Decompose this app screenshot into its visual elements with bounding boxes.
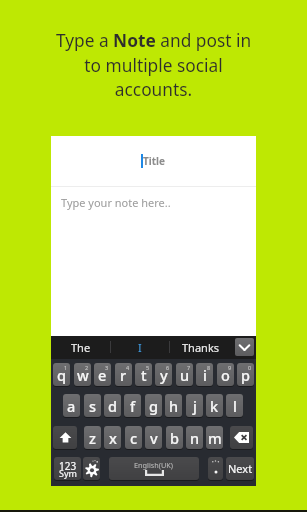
button[interactable]: More suggestions bbox=[235, 338, 254, 356]
staticText: I bbox=[138, 340, 142, 355]
button[interactable]: n bbox=[186, 426, 203, 449]
button[interactable]: y bbox=[155, 363, 172, 386]
staticText: h bbox=[169, 396, 179, 416]
staticText: 0 bbox=[248, 364, 252, 371]
button[interactable]: u bbox=[176, 363, 193, 386]
button[interactable]: s bbox=[84, 394, 101, 417]
button[interactable]: o bbox=[217, 363, 234, 386]
staticText: j bbox=[193, 396, 197, 416]
staticText: 2 bbox=[85, 364, 89, 371]
staticText: b bbox=[170, 428, 179, 448]
staticText: p bbox=[241, 365, 250, 385]
staticText: 9 bbox=[228, 364, 232, 371]
button[interactable]: q bbox=[53, 363, 70, 386]
button[interactable]: p bbox=[237, 363, 254, 386]
staticText: English(UK) bbox=[134, 460, 174, 470]
staticText: 3 bbox=[105, 364, 109, 371]
staticText: 4 bbox=[126, 364, 130, 371]
staticText: d bbox=[108, 396, 117, 416]
staticText: Type your note here.. bbox=[61, 195, 171, 210]
staticText: k bbox=[210, 396, 219, 416]
button[interactable]: The bbox=[51, 336, 110, 359]
staticText: t bbox=[141, 365, 147, 385]
staticText: z bbox=[89, 428, 96, 448]
button[interactable]: d bbox=[104, 394, 121, 417]
button[interactable]: h bbox=[165, 394, 182, 417]
button[interactable]: I bbox=[110, 336, 169, 359]
button[interactable]: Thanks bbox=[169, 336, 232, 359]
staticText: 5 bbox=[146, 364, 150, 371]
button[interactable]: t bbox=[135, 363, 152, 386]
staticText: a bbox=[67, 396, 76, 416]
staticText: i bbox=[203, 365, 207, 385]
staticText: Title bbox=[143, 154, 166, 168]
staticText: Type a Note and post in to multiple soci… bbox=[0, 29, 307, 101]
button[interactable]: k bbox=[206, 394, 223, 417]
button[interactable]: r bbox=[115, 363, 132, 386]
staticText: 6 bbox=[166, 364, 170, 371]
staticText: u bbox=[180, 365, 190, 385]
button[interactable]: Next bbox=[226, 457, 254, 480]
button[interactable]: f bbox=[124, 394, 141, 417]
button[interactable]: w bbox=[74, 363, 91, 386]
staticText: l bbox=[233, 396, 237, 416]
staticText: v bbox=[150, 428, 158, 448]
staticText: n bbox=[190, 428, 200, 448]
staticText: 123 bbox=[59, 459, 77, 473]
button[interactable]: m bbox=[206, 426, 223, 449]
staticText: 8 bbox=[207, 364, 211, 371]
staticText: y bbox=[160, 365, 168, 385]
staticText: e bbox=[98, 365, 107, 385]
button[interactable]: l bbox=[226, 394, 243, 417]
button[interactable]: v bbox=[145, 426, 162, 449]
button[interactable]: e bbox=[94, 363, 111, 386]
button[interactable]: c bbox=[125, 426, 142, 449]
button[interactable]: j bbox=[186, 394, 203, 417]
button[interactable]: i bbox=[196, 363, 213, 386]
button[interactable]: Backspace bbox=[230, 426, 253, 449]
staticText: Sym bbox=[59, 467, 77, 479]
button[interactable]: b bbox=[166, 426, 183, 449]
button[interactable]: z bbox=[84, 426, 101, 449]
button[interactable]: Space bbox=[109, 457, 199, 480]
staticText: Next bbox=[228, 461, 253, 476]
button[interactable]: Shift bbox=[53, 426, 77, 449]
staticText: o bbox=[221, 365, 230, 385]
staticText: q bbox=[57, 365, 66, 385]
staticText: c bbox=[130, 428, 138, 448]
staticText: The bbox=[71, 340, 91, 355]
button[interactable]: x bbox=[104, 426, 121, 449]
button[interactable]: Settings bbox=[83, 457, 100, 480]
staticText: m bbox=[208, 428, 222, 448]
button[interactable]: Period bbox=[208, 457, 223, 480]
button[interactable]: g bbox=[145, 394, 162, 417]
button[interactable]: a bbox=[63, 394, 80, 417]
staticText: x bbox=[109, 428, 117, 448]
staticText: s bbox=[89, 396, 97, 416]
staticText: g bbox=[149, 396, 158, 416]
staticText: 7 bbox=[187, 364, 191, 371]
staticText: 1 bbox=[64, 364, 68, 371]
staticText: w bbox=[77, 365, 89, 385]
staticText: f bbox=[130, 396, 136, 416]
staticText: r bbox=[120, 365, 127, 385]
button[interactable]: Symbols bbox=[54, 457, 81, 480]
staticText: Thanks bbox=[182, 340, 220, 355]
